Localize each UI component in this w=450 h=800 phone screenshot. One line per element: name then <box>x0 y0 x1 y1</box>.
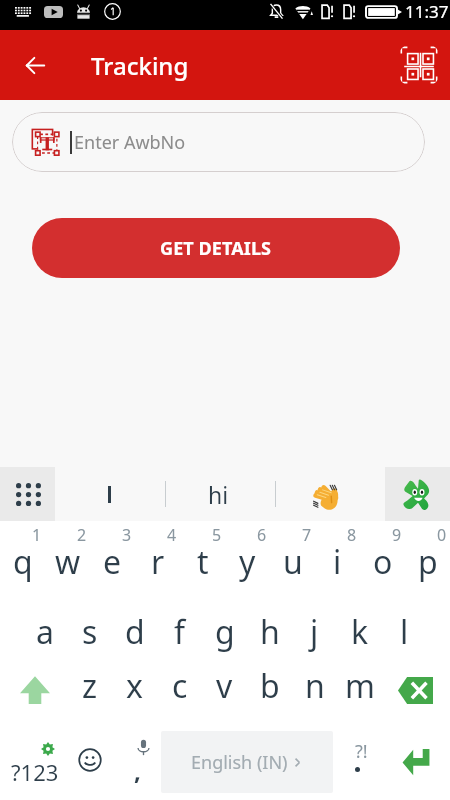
button[interactable]: z <box>67 656 112 724</box>
staticText: v <box>216 664 233 708</box>
staticText: 1 <box>32 524 42 546</box>
button[interactable]: 3 <box>90 521 135 590</box>
staticText: 7 <box>302 524 312 546</box>
button[interactable]: ?123 <box>0 724 67 800</box>
button[interactable]: j <box>292 590 337 656</box>
staticText: b <box>260 664 280 708</box>
staticText: z <box>82 664 98 708</box>
button[interactable]: f <box>157 590 202 656</box>
button[interactable]: 8 <box>315 521 360 590</box>
staticText: q <box>13 540 33 584</box>
button[interactable]: English (IN) <box>161 731 333 793</box>
button[interactable]: s <box>67 590 112 656</box>
staticText: GET DETAILS <box>160 236 272 261</box>
staticText: f <box>174 610 186 654</box>
button[interactable]: 6 <box>225 521 270 590</box>
staticText: English (IN) <box>191 750 288 775</box>
staticText: 3 <box>122 524 132 546</box>
button[interactable]: hi <box>166 467 275 521</box>
button[interactable]: h <box>247 590 292 656</box>
button[interactable]: Shift <box>0 656 67 724</box>
button[interactable]: 1 <box>0 521 45 590</box>
button[interactable]: 0 <box>405 521 450 590</box>
button[interactable]: 9 <box>360 521 405 590</box>
staticText: x <box>126 664 143 708</box>
button[interactable]: m <box>337 656 382 724</box>
button[interactable]: l <box>382 590 427 656</box>
button[interactable]: GET DETAILS <box>32 218 400 278</box>
button[interactable]: More options <box>0 467 55 521</box>
staticText: u <box>283 540 303 584</box>
staticText: m <box>345 664 375 708</box>
staticText: , <box>134 754 141 787</box>
staticText: 2 <box>77 524 87 546</box>
staticText: 11:37 <box>405 0 449 23</box>
button[interactable]: Assistant <box>385 467 450 521</box>
staticText: Enter AwbNo <box>74 130 186 155</box>
staticText: l <box>400 610 409 654</box>
button[interactable] <box>276 467 385 521</box>
staticText: r <box>151 540 165 584</box>
staticText: ?! <box>355 739 368 764</box>
button[interactable]: 5 <box>180 521 225 590</box>
button[interactable]: Emoji <box>67 724 112 800</box>
staticText: Tracking <box>91 49 189 82</box>
staticText: c <box>172 664 188 708</box>
staticText: ?123 <box>11 757 59 787</box>
staticText: 6 <box>257 524 267 546</box>
staticText: s <box>82 610 98 654</box>
button[interactable]: Scan QR code <box>395 41 443 89</box>
staticText: t <box>197 540 209 584</box>
button[interactable] <box>55 467 165 521</box>
button[interactable]: k <box>337 590 382 656</box>
button[interactable]: n <box>292 656 337 724</box>
staticText: 0 <box>437 524 447 546</box>
staticText: 8 <box>347 524 357 546</box>
button[interactable]: 7 <box>270 521 315 590</box>
staticText: d <box>125 610 145 654</box>
staticText: y <box>239 540 256 584</box>
button[interactable]: d <box>112 590 157 656</box>
staticText: 4 <box>167 524 177 546</box>
staticText: w <box>55 540 81 584</box>
button[interactable]: Back <box>11 41 59 89</box>
button[interactable]: Enter <box>382 724 450 800</box>
staticText: 5 <box>212 524 222 546</box>
staticText: n <box>305 664 325 708</box>
staticText: o <box>373 540 393 584</box>
button[interactable]: Enter AwbNo <box>12 112 425 172</box>
button[interactable]: g <box>202 590 247 656</box>
button[interactable]: , <box>112 724 157 800</box>
button[interactable]: Backspace <box>382 656 450 724</box>
staticText: p <box>418 540 438 584</box>
staticText: 9 <box>392 524 402 546</box>
button[interactable]: 2 <box>45 521 90 590</box>
button[interactable]: ?! <box>337 724 382 800</box>
staticText: a <box>36 610 54 654</box>
button[interactable]: b <box>247 656 292 724</box>
button[interactable]: a <box>22 590 67 656</box>
staticText: i <box>333 540 342 584</box>
staticText: h <box>260 610 280 654</box>
button[interactable]: v <box>202 656 247 724</box>
button[interactable]: c <box>157 656 202 724</box>
staticText: e <box>103 540 122 584</box>
staticText: hi <box>208 479 229 510</box>
button[interactable]: 4 <box>135 521 180 590</box>
button[interactable]: x <box>112 656 157 724</box>
staticText: k <box>351 610 369 654</box>
staticText: j <box>310 610 319 654</box>
staticText: g <box>215 610 235 654</box>
